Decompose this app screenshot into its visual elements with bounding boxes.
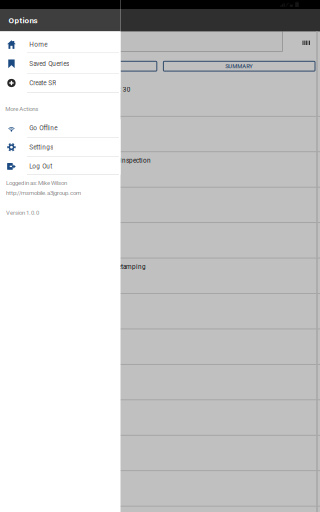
staticText: http://msmobile.a3jgroup.com <box>6 189 81 196</box>
button[interactable]: Settings <box>0 0 120 512</box>
staticText: Log Out <box>29 163 52 170</box>
button[interactable]: Create SR <box>0 0 120 512</box>
button[interactable]: LIST <box>0 0 153 10</box>
button[interactable]: Saved Queries <box>0 0 120 512</box>
staticText: Replace gasket and retamping <box>59 263 146 271</box>
button[interactable]: SUMMARY <box>0 0 152 10</box>
staticText: Go Offline <box>29 124 57 132</box>
staticText: Valve calibration <box>7 192 55 200</box>
staticText: SUMMARY <box>225 63 253 69</box>
staticText: Conveyor belt check 30 <box>63 86 131 93</box>
staticText: Create SR <box>29 79 56 87</box>
button[interactable]: Go Offline <box>0 0 120 512</box>
staticText: Home <box>29 41 47 48</box>
staticText: Pump seal leak <box>7 121 51 129</box>
staticText: Options <box>9 16 38 25</box>
staticText: Routine equipment inspection <box>61 157 151 164</box>
staticText: More Actions <box>5 105 38 112</box>
staticText: Version 1.0.0 <box>6 209 39 216</box>
button[interactable]: Log Out <box>0 0 120 512</box>
staticText: Saved Queries <box>29 60 69 68</box>
staticText: Logged in as: Mike Wilson <box>6 179 67 186</box>
staticText: Settings <box>29 143 53 151</box>
button[interactable]: Home <box>0 0 120 512</box>
